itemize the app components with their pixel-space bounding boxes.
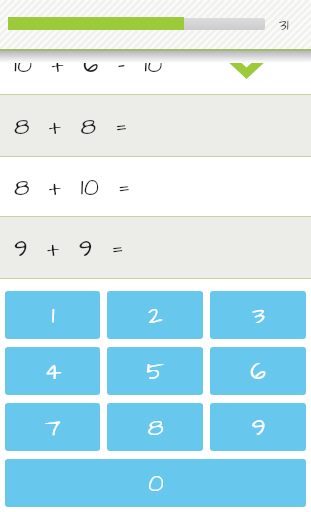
button[interactable]: 5 [107,347,203,395]
staticText: 9 [251,410,266,445]
button[interactable]: 3 [210,291,306,339]
staticText: 6 [250,354,266,389]
button[interactable]: 1 [5,291,100,339]
staticText: 10 + 6 - 10 [14,63,163,81]
staticText: 8 + 10 = [14,171,130,204]
button[interactable]: 6 [210,347,306,395]
staticText: 7 [45,410,61,445]
button[interactable]: 7 [5,403,100,451]
button[interactable]: 2 [107,291,203,339]
staticText: 1 [51,298,55,333]
button[interactable]: 8 + 10 = [0,157,311,217]
staticText: 8 + 8 = [14,110,128,143]
button[interactable]: 4 [5,347,100,395]
button[interactable]: 10 + 6 - 10 [0,63,311,95]
button[interactable]: 8 [107,403,203,451]
staticText: 3 [252,298,265,333]
staticText: 5 [146,354,164,389]
button[interactable]: Correct answer [225,63,268,79]
staticText: 2 [148,298,163,333]
staticText: 31 [279,15,289,36]
staticText: 9 + 9 = [14,232,124,265]
staticText: 4 [44,354,62,389]
button[interactable]: 9 + 9 = [0,217,311,279]
staticText: 0 [148,466,164,501]
staticText: 8 [147,410,164,445]
button[interactable]: 0 [5,459,306,507]
button[interactable]: 9 [210,403,306,451]
button[interactable]: 8 + 8 = [0,95,311,157]
